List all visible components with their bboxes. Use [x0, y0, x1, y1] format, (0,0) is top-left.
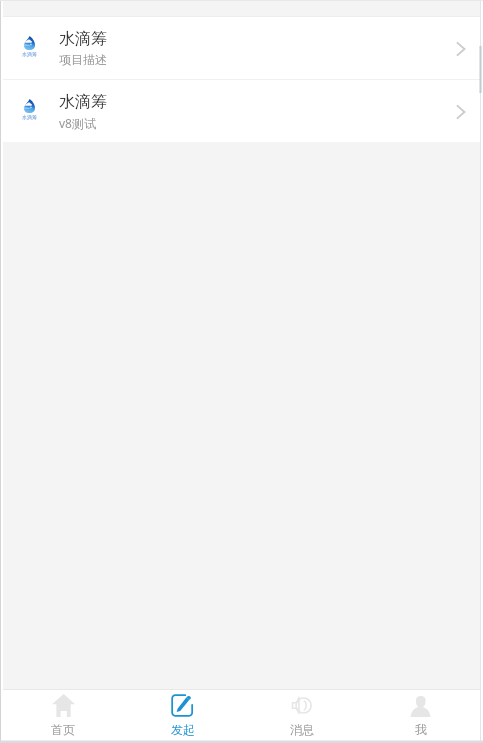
button[interactable]: Home: [3, 690, 123, 743]
staticText: v8测试: [59, 115, 96, 131]
staticText: 项目描述: [59, 52, 107, 67]
button[interactable]: 水滴筹: [3, 80, 480, 142]
staticText: 首页: [51, 722, 75, 737]
staticText: 水滴筹: [59, 29, 107, 49]
button[interactable]: Create: [123, 690, 242, 743]
button[interactable]: Profile: [361, 690, 480, 743]
staticText: 我: [415, 722, 427, 737]
staticText: 发起: [171, 722, 195, 737]
button[interactable]: 水滴筹: [3, 17, 480, 79]
staticText: 水滴筹: [59, 92, 107, 112]
staticText: 消息: [290, 722, 314, 737]
staticText: 水滴筹: [22, 114, 37, 120]
staticText: 水滴筹: [22, 51, 37, 57]
button[interactable]: Messages: [242, 690, 361, 743]
